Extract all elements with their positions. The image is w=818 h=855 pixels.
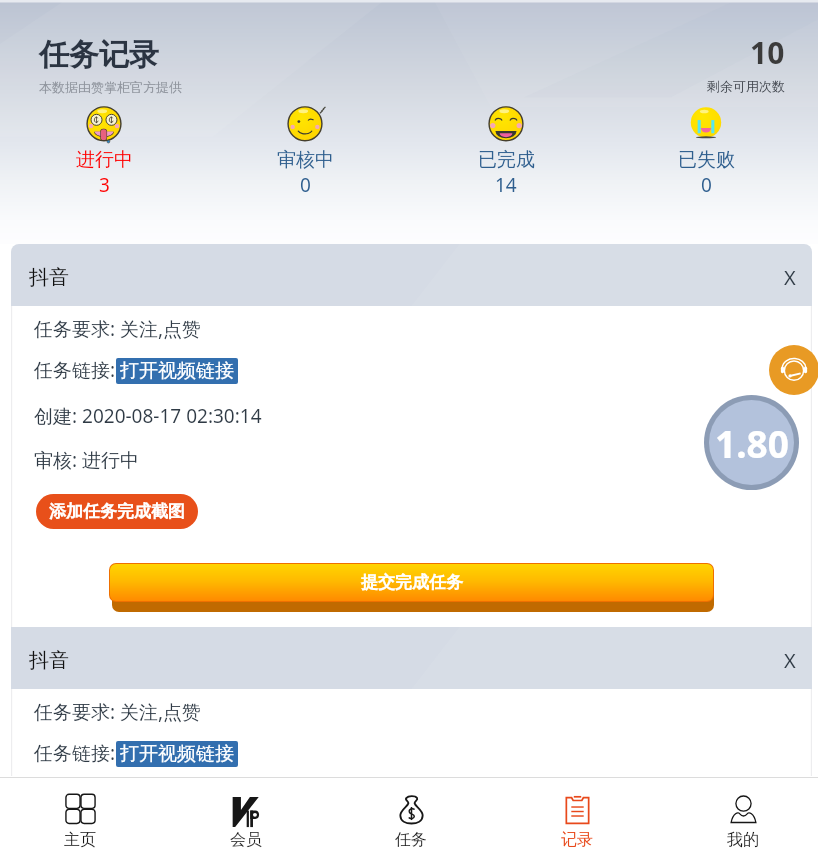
staticText: 抖音 xyxy=(29,265,69,290)
button[interactable]: Close xyxy=(780,262,800,289)
button[interactable]: Customer service xyxy=(769,345,818,395)
button[interactable]: 我的 xyxy=(663,777,818,850)
button[interactable]: 会员 xyxy=(166,777,326,850)
staticText: 打开视频链接 xyxy=(120,359,234,383)
button[interactable]: 1.80 xyxy=(709,400,794,485)
button[interactable]: 打开视频链接 xyxy=(120,742,234,766)
staticText: 任务要求: 关注,点赞 xyxy=(34,316,202,342)
staticText: 14 xyxy=(495,172,517,198)
staticText: 进行中 xyxy=(76,148,133,172)
button[interactable]: 任务 xyxy=(331,777,491,850)
staticText: X xyxy=(784,264,796,291)
button[interactable]: 打开视频链接 xyxy=(120,359,234,383)
staticText: 任务要求: 关注,点赞 xyxy=(34,699,202,725)
staticText: 已失败 xyxy=(678,148,735,172)
staticText: 任务 xyxy=(395,830,427,850)
button[interactable]: 抖音 xyxy=(11,244,812,306)
staticText: 0 xyxy=(300,172,311,198)
staticText: 审核: 进行中 xyxy=(34,447,140,473)
staticText: 创建: 2020-08-17 02:30:14 xyxy=(34,403,262,429)
staticText: 任务记录 xyxy=(39,36,159,74)
staticText: 已完成 xyxy=(478,148,535,172)
staticText: 0 xyxy=(701,172,712,198)
staticText: 打开视频链接 xyxy=(120,742,234,766)
staticText: 我的 xyxy=(727,830,759,850)
staticText: 剩余可用次数 xyxy=(707,78,785,94)
button[interactable]: 已失败 xyxy=(626,104,786,198)
button[interactable]: Close xyxy=(780,645,800,672)
staticText: 抖音 xyxy=(29,648,69,673)
staticText: 本数据由赞掌柜官方提供 xyxy=(39,79,182,95)
button[interactable]: 主页 xyxy=(0,777,160,850)
staticText: 记录 xyxy=(561,830,593,850)
button[interactable]: 提交完成任务 xyxy=(110,564,713,601)
button[interactable]: 已完成 xyxy=(426,104,586,198)
staticText: 3 xyxy=(99,172,110,198)
staticText: 1.80 xyxy=(715,418,789,468)
staticText: 添加任务完成截图 xyxy=(49,501,185,522)
button[interactable]: 添加任务完成截图 xyxy=(36,494,198,529)
staticText: 任务链接: xyxy=(34,357,116,383)
staticText: 任务链接: xyxy=(34,740,116,766)
staticText: 10 xyxy=(750,32,785,73)
button[interactable]: 抖音 xyxy=(11,627,812,689)
staticText: 主页 xyxy=(64,830,96,850)
staticText: X xyxy=(784,647,796,674)
staticText: 审核中 xyxy=(277,148,334,172)
staticText: 会员 xyxy=(230,830,262,850)
button[interactable]: 进行中 xyxy=(24,104,184,198)
button[interactable]: 审核中 xyxy=(225,104,385,198)
button[interactable]: 记录 xyxy=(497,777,657,850)
staticText: 提交完成任务 xyxy=(361,572,463,593)
